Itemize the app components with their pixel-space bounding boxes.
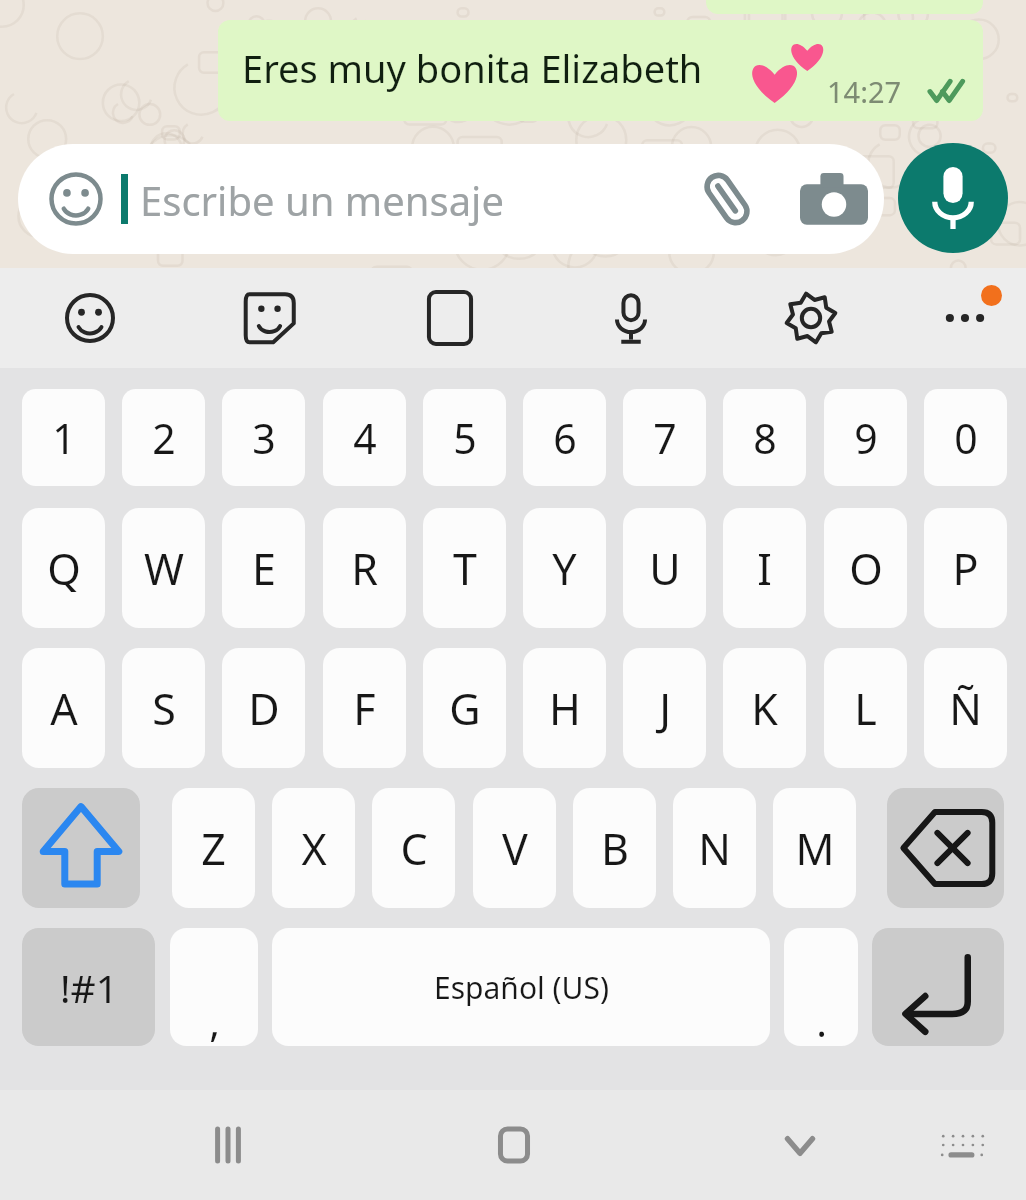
button[interactable]: Y <box>523 508 606 628</box>
button[interactable]: E <box>222 508 305 628</box>
button[interactable]: O <box>824 508 907 628</box>
button[interactable]: 5 <box>423 389 506 486</box>
button[interactable]: Home <box>469 1100 559 1190</box>
button[interactable]: B <box>573 788 656 908</box>
staticText: J <box>659 679 671 738</box>
staticText: I <box>757 539 772 598</box>
staticText: 5 <box>453 410 477 466</box>
staticText: F <box>353 679 376 738</box>
button[interactable]: Voice typing <box>586 273 676 363</box>
button[interactable]: 3 <box>222 389 305 486</box>
staticText: , <box>209 994 220 1046</box>
button[interactable]: 4 <box>323 389 406 486</box>
staticText: Q <box>47 539 81 598</box>
button[interactable]: Español (US) <box>272 928 770 1046</box>
staticText: H <box>549 679 581 738</box>
button[interactable]: C <box>372 788 455 908</box>
staticText: O <box>849 539 883 598</box>
staticText: 2 <box>152 410 176 466</box>
button[interactable]: Q <box>22 508 105 628</box>
staticText: 14:27 <box>827 72 902 111</box>
button[interactable]: GIF <box>405 273 495 363</box>
button[interactable]: Enter <box>872 928 1004 1046</box>
staticText: Escribe un mensaje <box>140 173 504 227</box>
button[interactable]: !#1 <box>22 928 155 1046</box>
button[interactable]: N <box>673 788 756 908</box>
button[interactable]: J <box>623 648 706 768</box>
button[interactable]: V <box>473 788 556 908</box>
staticText: 0 <box>954 410 978 466</box>
button[interactable]: Stickers <box>225 273 315 363</box>
button[interactable]: More options <box>920 273 1010 363</box>
button[interactable]: , <box>170 928 258 1046</box>
staticText: E <box>252 539 276 598</box>
button[interactable]: M <box>773 788 856 908</box>
other: Camera <box>800 172 868 228</box>
button[interactable]: 6 <box>523 389 606 486</box>
staticText: 8 <box>753 410 777 466</box>
staticText: Z <box>201 819 226 878</box>
staticText: K <box>751 679 778 738</box>
button[interactable]: W <box>122 508 205 628</box>
button[interactable]: Settings <box>766 273 856 363</box>
staticText: 9 <box>854 410 878 466</box>
button[interactable]: Shift <box>22 788 140 908</box>
button[interactable]: X <box>272 788 355 908</box>
button[interactable]: 2 <box>122 389 205 486</box>
button[interactable]: Backspace <box>887 788 1004 908</box>
staticText: D <box>248 679 280 738</box>
staticText: L <box>854 679 877 738</box>
button[interactable]: I <box>723 508 806 628</box>
staticText: B <box>601 819 629 878</box>
staticText: 4 <box>353 410 377 466</box>
staticText: 1 <box>52 410 76 466</box>
button[interactable]: U <box>623 508 706 628</box>
button[interactable]: 0 <box>924 389 1007 486</box>
button[interactable]: Emoji <box>45 273 135 363</box>
button[interactable]: R <box>323 508 406 628</box>
staticText: S <box>152 679 176 738</box>
button[interactable]: 7 <box>623 389 706 486</box>
button[interactable]: P <box>924 508 1007 628</box>
button[interactable]: 9 <box>824 389 907 486</box>
button[interactable]: Hide keyboard <box>755 1100 845 1190</box>
button[interactable]: K <box>723 648 806 768</box>
button[interactable]: Switch keyboard <box>918 1100 1008 1190</box>
staticText: Español (US) <box>434 967 609 1008</box>
button[interactable]: L <box>824 648 907 768</box>
button[interactable]: D <box>222 648 305 768</box>
staticText: W <box>144 539 184 598</box>
staticText: V <box>502 819 528 878</box>
button[interactable]: Record voice message <box>898 143 1008 253</box>
button[interactable]: Recent apps <box>183 1100 273 1190</box>
button[interactable]: H <box>523 648 606 768</box>
staticText: 6 <box>553 410 577 466</box>
staticText: N <box>698 819 731 878</box>
button[interactable]: . <box>784 928 858 1046</box>
staticText: 3 <box>252 410 276 466</box>
button[interactable]: Ñ <box>924 648 1007 768</box>
other: Emoji <box>47 170 105 228</box>
button[interactable]: A <box>22 648 105 768</box>
staticText: G <box>449 679 481 738</box>
button[interactable]: S <box>122 648 205 768</box>
button[interactable]: Z <box>172 788 255 908</box>
staticText: Y <box>552 539 577 598</box>
staticText: U <box>649 539 681 598</box>
button[interactable]: F <box>323 648 406 768</box>
staticText: T <box>453 539 477 598</box>
staticText: A <box>50 679 78 738</box>
staticText: R <box>351 539 378 598</box>
button[interactable]: T <box>423 508 506 628</box>
button[interactable]: 1 <box>22 389 105 486</box>
staticText: Ñ <box>949 679 982 738</box>
button[interactable]: G <box>423 648 506 768</box>
staticText: P <box>952 539 979 598</box>
button[interactable]: 8 <box>723 389 806 486</box>
button[interactable]: Emoji <box>18 144 884 254</box>
staticText: 7 <box>653 410 677 466</box>
staticText: Eres muy bonita Elizabeth <box>242 42 703 94</box>
staticText: !#1 <box>60 961 118 1014</box>
button[interactable]: Eres muy bonita Elizabeth <box>218 20 983 121</box>
